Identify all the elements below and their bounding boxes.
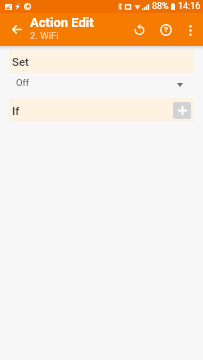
staticText: 14:16 [178, 1, 201, 12]
button[interactable]: Add [173, 102, 191, 119]
button[interactable]: Off [0, 73, 203, 98]
staticText: 2. WiFi [30, 30, 59, 41]
staticText: Action Edit [30, 15, 94, 30]
staticText: Off [16, 77, 30, 88]
button[interactable]: Help [152, 16, 179, 43]
button[interactable]: More options [179, 19, 201, 41]
staticText: 88% [152, 1, 169, 12]
button[interactable]: Back [0, 14, 31, 45]
button[interactable]: Undo [125, 16, 152, 43]
staticText: Set [12, 55, 29, 68]
button[interactable]: Set [9, 49, 194, 73]
staticText: If [12, 104, 20, 117]
staticText: ? [164, 25, 168, 34]
